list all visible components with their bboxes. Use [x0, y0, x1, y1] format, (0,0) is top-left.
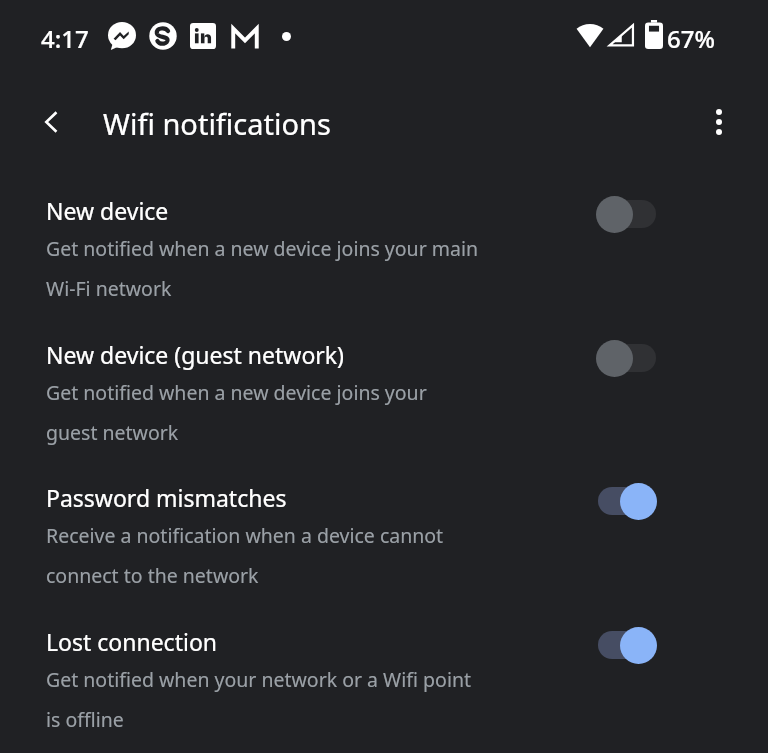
- staticText: is offline: [46, 706, 124, 733]
- button[interactable]: Lost connection on: [596, 623, 664, 667]
- staticText: Receive a notification when a device can…: [46, 522, 444, 549]
- staticText: New device: [46, 195, 169, 226]
- staticText: Lost connection: [46, 626, 218, 657]
- button[interactable]: Password mismatches on: [596, 479, 664, 523]
- button[interactable]: New device off: [596, 192, 664, 236]
- staticText: Get notified when a new device joins you…: [46, 235, 479, 262]
- staticText: Get notified when your network or a Wifi…: [46, 666, 472, 693]
- button[interactable]: Lost connection: [0, 623, 768, 753]
- button[interactable]: New device: [0, 192, 768, 332]
- staticText: 67%: [667, 22, 715, 55]
- staticText: Password mismatches: [46, 482, 287, 513]
- button[interactable]: More options: [695, 98, 743, 146]
- button[interactable]: Back: [28, 98, 76, 146]
- staticText: New device (guest network): [46, 339, 345, 370]
- staticText: Wifi notifications: [103, 104, 331, 143]
- button[interactable]: Password mismatches: [0, 479, 768, 619]
- staticText: Get notified when a new device joins you…: [46, 379, 427, 406]
- staticText: 4:17: [41, 22, 89, 55]
- staticText: guest network: [46, 419, 179, 446]
- button[interactable]: New device (guest network) off: [596, 336, 664, 380]
- staticText: Wi-Fi network: [46, 275, 172, 302]
- button[interactable]: New device (guest network): [0, 336, 768, 476]
- staticText: connect to the network: [46, 562, 259, 589]
